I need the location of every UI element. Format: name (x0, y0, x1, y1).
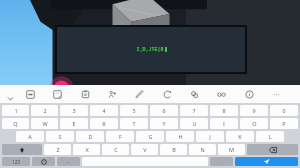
staticText: H (178, 133, 183, 140)
staticText: 1 (14, 107, 18, 114)
button[interactable]: Contacts (104, 86, 120, 102)
button[interactable]: Translate (186, 86, 202, 102)
button[interactable]: , (57, 157, 80, 166)
button[interactable]: L (256, 131, 284, 142)
staticText: N (200, 146, 205, 153)
button[interactable]: E (60, 118, 88, 129)
button[interactable]: . (210, 157, 233, 166)
button[interactable]: History (159, 86, 175, 102)
button[interactable]: N (189, 144, 216, 155)
button[interactable]: S (46, 131, 74, 142)
button[interactable]: Draw (131, 86, 147, 102)
button[interactable]: Shift (2, 144, 42, 155)
staticText: J (209, 133, 211, 140)
button[interactable]: G (136, 131, 164, 142)
staticText: 6 (162, 107, 166, 114)
staticText: 0 (282, 107, 286, 114)
button[interactable]: B (160, 144, 187, 155)
button[interactable]: Glasses (213, 86, 229, 102)
button[interactable]: Backspace (247, 144, 298, 155)
staticText: 9 (252, 107, 256, 114)
button[interactable]: W (31, 118, 58, 129)
button[interactable]: O (240, 118, 268, 129)
button[interactable]: 9 (240, 105, 268, 116)
staticText: Z (56, 146, 60, 153)
button[interactable]: Sticker (49, 86, 65, 102)
button[interactable]: R (90, 118, 118, 129)
button[interactable]: Emoji (32, 157, 55, 166)
staticText: 123 (12, 159, 20, 165)
button[interactable]: C (102, 144, 129, 155)
staticText: T (132, 120, 136, 127)
button[interactable]: I,D,JTE|R (57, 27, 245, 72)
button[interactable]: I (210, 118, 238, 129)
button[interactable]: Z (44, 144, 71, 155)
button[interactable]: 7 (180, 105, 208, 116)
button[interactable]: U (180, 118, 208, 129)
button[interactable]: 5 (120, 105, 148, 116)
button[interactable]: 0 (270, 105, 298, 116)
staticText: L (269, 133, 272, 140)
staticText: O (252, 120, 257, 127)
staticText: I,D,JTE|R (136, 46, 164, 53)
button[interactable]: Info (241, 86, 257, 102)
button[interactable]: Collapse toolbar (7, 95, 14, 102)
button[interactable]: V (131, 144, 158, 155)
staticText: C (114, 146, 118, 153)
button[interactable]: A (16, 131, 44, 142)
button[interactable]: Keyboard (22, 86, 38, 102)
button[interactable]: 6 (150, 105, 178, 116)
button[interactable]: 1 (2, 105, 29, 116)
staticText: Q (13, 120, 18, 127)
staticText: A (28, 133, 32, 140)
button[interactable]: H (166, 131, 194, 142)
staticText: S (58, 133, 62, 140)
staticText: G (148, 133, 153, 140)
staticText: 8 (222, 107, 226, 114)
button[interactable]: 123 (2, 157, 30, 166)
staticText: , (68, 158, 70, 165)
button[interactable]: F (106, 131, 134, 142)
button[interactable]: 2 (31, 105, 58, 116)
staticText: D (88, 133, 93, 140)
staticText: E (72, 120, 76, 127)
staticText: Y (162, 120, 166, 127)
button[interactable]: T (120, 118, 148, 129)
staticText: M (229, 146, 234, 153)
button[interactable]: More (268, 86, 284, 102)
button[interactable]: K (226, 131, 254, 142)
staticText: . (221, 158, 223, 165)
button[interactable]: 4 (90, 105, 118, 116)
staticText: U (192, 120, 197, 127)
button[interactable]: Y (150, 118, 178, 129)
staticText: B (172, 146, 176, 153)
staticText: R (102, 120, 106, 127)
button[interactable]: D (76, 131, 104, 142)
staticText: 7 (192, 107, 196, 114)
button[interactable]: Send (235, 157, 298, 166)
staticText: 3 (72, 107, 76, 114)
staticText: V (143, 146, 147, 153)
button[interactable]: Q (2, 118, 29, 129)
staticText: 5 (132, 107, 136, 114)
staticText: W (42, 120, 48, 127)
button[interactable]: 8 (210, 105, 238, 116)
button[interactable]: P (270, 118, 298, 129)
staticText: K (238, 133, 242, 140)
button[interactable]: J (196, 131, 224, 142)
staticText: F (119, 133, 122, 140)
button[interactable]: M (218, 144, 245, 155)
staticText: X (85, 146, 89, 153)
staticText: 4 (102, 107, 106, 114)
button[interactable]: 3 (60, 105, 88, 116)
staticText: 2 (43, 107, 47, 114)
staticText: I (223, 120, 225, 127)
button[interactable]: X (73, 144, 100, 155)
button[interactable]: Clipboard (77, 86, 93, 102)
staticText: P (282, 120, 286, 127)
